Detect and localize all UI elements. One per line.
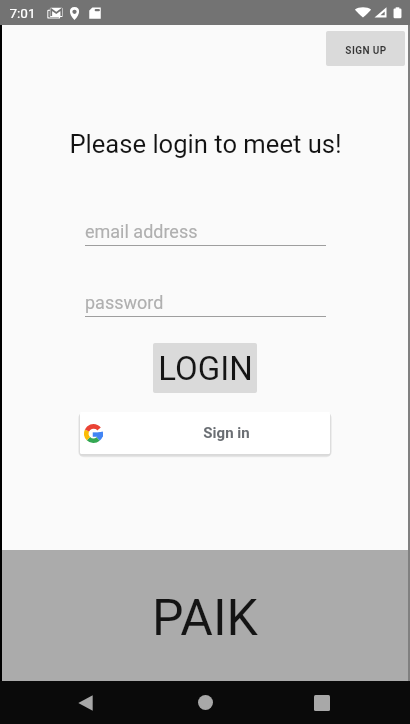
button[interactable]: SIGN UP xyxy=(326,31,405,66)
staticText: Sign in xyxy=(203,424,250,442)
button[interactable]: Home xyxy=(181,681,229,724)
button[interactable]: password xyxy=(85,287,326,317)
staticText: Please login to meet us! xyxy=(69,129,342,159)
button[interactable]: Back xyxy=(61,681,109,724)
button[interactable]: Recent apps xyxy=(298,681,346,724)
button[interactable]: email address xyxy=(85,216,326,246)
staticText: PAIK xyxy=(152,589,258,648)
staticText: LOGIN xyxy=(158,349,253,388)
staticText: password xyxy=(85,292,164,313)
button[interactable]: Sign in xyxy=(80,412,330,454)
staticText: 7:01 xyxy=(9,5,36,21)
button[interactable]: LOGIN xyxy=(153,343,257,393)
staticText: SIGN UP xyxy=(345,45,387,57)
staticText: email address xyxy=(85,221,198,242)
